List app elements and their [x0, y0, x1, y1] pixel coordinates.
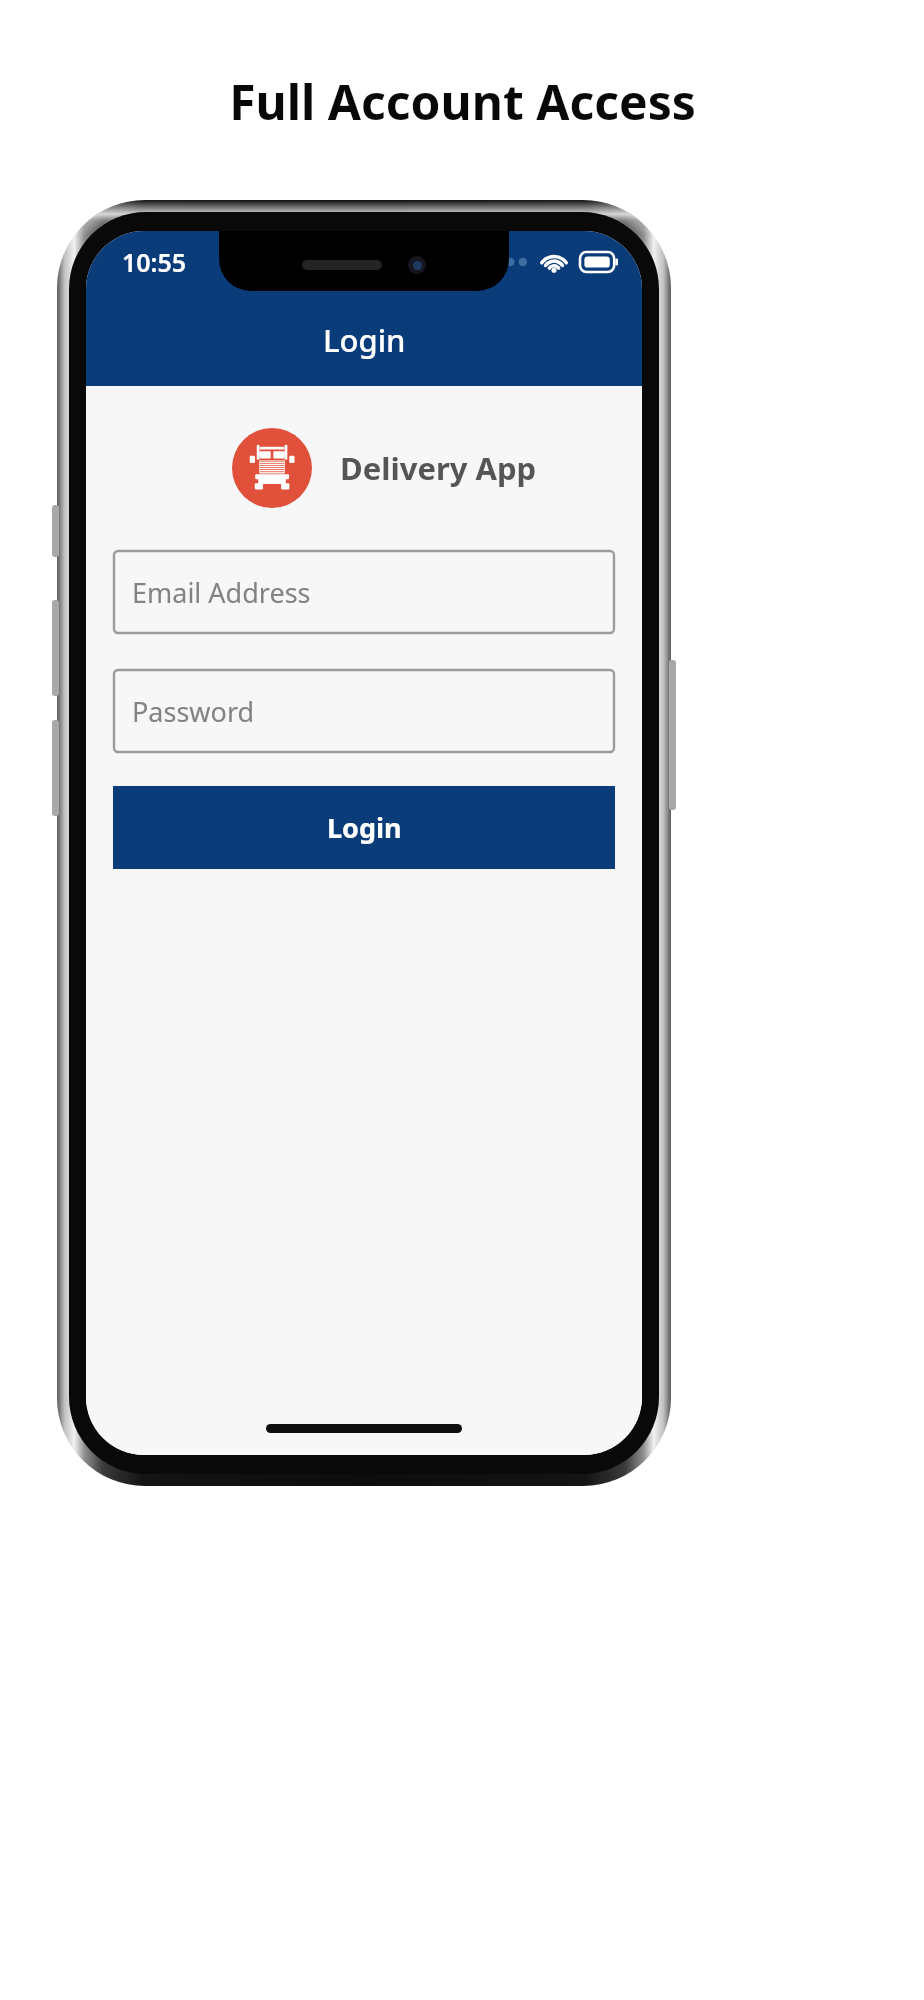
staticText: Delivery App — [340, 447, 537, 489]
staticText: Login — [323, 319, 406, 361]
button[interactable]: Email Address — [114, 551, 614, 633]
staticText: 10:55 — [122, 245, 187, 279]
staticText: Password — [132, 693, 255, 730]
staticText: Login — [327, 809, 402, 846]
staticText: Full Account Access — [229, 69, 696, 134]
button[interactable]: Password — [114, 670, 614, 752]
staticText: Email Address — [132, 574, 311, 611]
button[interactable]: Login — [113, 786, 615, 869]
